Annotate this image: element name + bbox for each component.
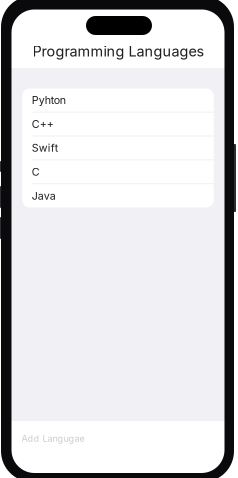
staticText: Pyhton	[32, 94, 66, 107]
button[interactable]: Add Langugae	[11, 433, 224, 444]
button[interactable]: Swift	[22, 136, 214, 160]
button[interactable]: Java	[22, 184, 214, 207]
staticText: Java	[32, 189, 56, 202]
staticText: Swift	[32, 141, 58, 154]
button[interactable]: Pyhton	[22, 88, 214, 112]
staticText: Add Langugae	[21, 433, 84, 444]
button[interactable]: C++	[22, 112, 214, 136]
staticText: C	[32, 165, 40, 178]
button[interactable]: C	[22, 160, 214, 183]
staticText: Programming Languages	[32, 43, 204, 60]
staticText: C++	[32, 118, 54, 130]
